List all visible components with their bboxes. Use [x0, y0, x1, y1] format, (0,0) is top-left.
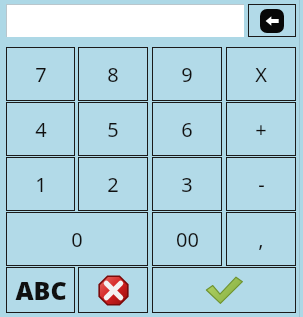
button[interactable]: X	[226, 47, 296, 101]
button[interactable]: Switch to letters	[6, 267, 75, 313]
button[interactable]: 7	[6, 47, 75, 101]
button[interactable]: +	[226, 102, 296, 156]
button[interactable]: Backspace	[248, 4, 296, 37]
button[interactable]: 3	[152, 157, 222, 211]
button[interactable]: Cancel	[78, 267, 148, 313]
staticText: 9	[181, 61, 193, 88]
staticText: 0	[71, 226, 83, 253]
button[interactable]: 2	[78, 157, 148, 211]
staticText: X	[255, 61, 267, 88]
button[interactable]: 0	[6, 212, 148, 266]
staticText: 2	[107, 171, 119, 198]
staticText: 00	[176, 226, 199, 253]
button[interactable]: 9	[152, 47, 222, 101]
staticText: +	[255, 116, 267, 143]
button[interactable]: ,	[226, 212, 296, 266]
staticText: 4	[35, 116, 47, 143]
staticText: ,	[258, 226, 264, 253]
staticText: 1	[35, 171, 47, 198]
staticText: 7	[35, 61, 47, 88]
staticText: 8	[107, 61, 119, 88]
staticText: ABC	[15, 273, 67, 307]
button[interactable]: 6	[152, 102, 222, 156]
staticText: 6	[181, 116, 193, 143]
button[interactable]: -	[226, 157, 296, 211]
button[interactable]: 1	[6, 157, 75, 211]
button[interactable]: 4	[6, 102, 75, 156]
staticText: 3	[181, 171, 193, 198]
button[interactable]: 8	[78, 47, 148, 101]
staticText: -	[258, 171, 265, 198]
button[interactable]: 00	[152, 212, 222, 266]
button[interactable]: Accept	[152, 267, 296, 313]
button[interactable]: 5	[78, 102, 148, 156]
staticText: 5	[107, 116, 119, 143]
